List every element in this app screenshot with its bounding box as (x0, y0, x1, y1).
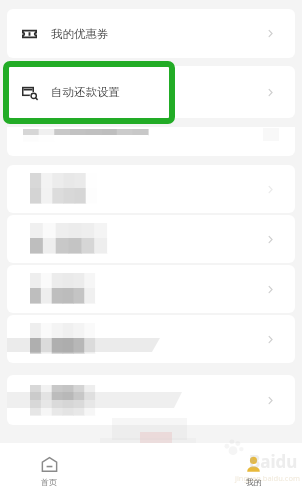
staticText: 自动还款设置 (51, 85, 120, 99)
button[interactable]: 首页 (0, 443, 98, 499)
button[interactable] (7, 315, 295, 363)
staticText: Baidu (249, 450, 298, 473)
button[interactable]: 自动还款设置 (7, 66, 295, 118)
staticText: jingyan.baidu.com (235, 473, 300, 483)
staticText: 我的优惠券 (51, 27, 109, 41)
button[interactable] (7, 265, 295, 313)
button[interactable]: 我的优惠券 (7, 9, 295, 58)
button[interactable] (7, 165, 295, 213)
button[interactable] (7, 215, 295, 263)
button[interactable]: 我的 (205, 443, 302, 499)
button[interactable] (7, 375, 295, 425)
staticText: 我的 (246, 477, 262, 487)
staticText: 首页 (41, 477, 57, 487)
